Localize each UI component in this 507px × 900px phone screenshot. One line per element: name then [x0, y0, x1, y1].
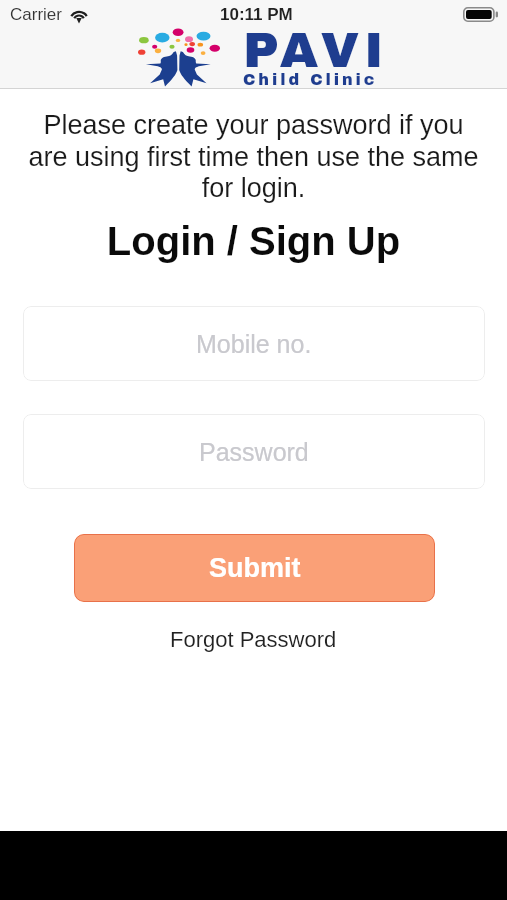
- button[interactable]: Mobile no.: [23, 306, 485, 381]
- button[interactable]: Password: [23, 414, 485, 489]
- staticText: Carrier: [10, 5, 62, 24]
- staticText: PAVI: [243, 23, 389, 77]
- other: Battery full: [463, 7, 499, 22]
- staticText: 10:11 PM: [220, 5, 293, 24]
- staticText: Password: [199, 438, 309, 466]
- button[interactable]: Forgot Password: [158, 623, 349, 656]
- other: Wi-Fi signal: [69, 8, 89, 22]
- staticText: Login / Sign Up: [0, 219, 507, 264]
- staticText: Mobile no.: [196, 330, 312, 358]
- staticText: Please create your password if you are u…: [0, 110, 507, 203]
- staticText: Submit: [209, 553, 301, 583]
- staticText: Child Clinic: [243, 71, 378, 88]
- button[interactable]: Submit: [74, 534, 435, 602]
- staticText: Forgot Password: [170, 627, 337, 652]
